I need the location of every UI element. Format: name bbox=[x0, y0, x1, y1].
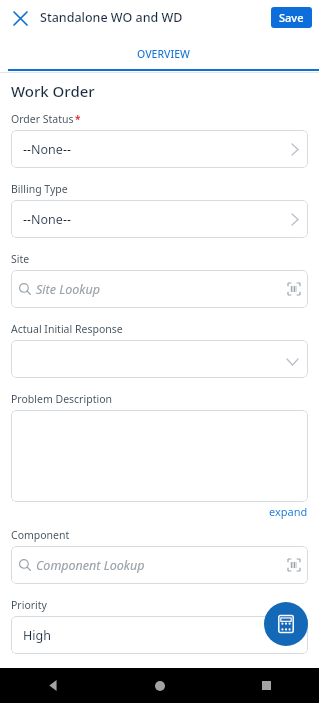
button[interactable]: --None-- bbox=[11, 130, 308, 168]
staticText: Priority bbox=[11, 598, 47, 612]
button[interactable]: Scan bbox=[288, 559, 300, 571]
staticText: Actual Initial Response bbox=[11, 322, 123, 336]
button[interactable]: High bbox=[11, 616, 308, 654]
button[interactable]: Save bbox=[271, 7, 312, 28]
staticText: Work Order bbox=[11, 81, 95, 101]
staticText: Component Lookup bbox=[36, 557, 145, 574]
button[interactable]: Recent apps bbox=[213, 668, 319, 703]
button[interactable]: Close bbox=[6, 4, 34, 32]
staticText: High bbox=[23, 627, 51, 644]
staticText: Component bbox=[11, 528, 70, 542]
staticText: Billing Type bbox=[11, 182, 68, 196]
button[interactable]: Home bbox=[107, 668, 213, 703]
button[interactable] bbox=[11, 410, 308, 502]
staticText: OVERVIEW bbox=[137, 47, 190, 61]
staticText: Order Status bbox=[11, 112, 74, 126]
button[interactable]: Back bbox=[0, 668, 107, 703]
button[interactable]: Component Lookup bbox=[11, 546, 308, 584]
button[interactable] bbox=[11, 340, 308, 378]
staticText: Standalone WO and WD bbox=[40, 9, 183, 26]
button[interactable]: expand bbox=[265, 502, 308, 519]
button[interactable]: Calculator bbox=[264, 602, 308, 646]
staticText: Site bbox=[11, 252, 30, 266]
staticText: Site Lookup bbox=[36, 281, 100, 298]
staticText: --None-- bbox=[23, 141, 71, 158]
staticText: Save bbox=[279, 10, 304, 25]
staticText: expand bbox=[269, 504, 308, 519]
button[interactable]: OVERVIEW bbox=[8, 35, 319, 73]
button[interactable]: --None-- bbox=[11, 200, 308, 238]
staticText: * bbox=[75, 112, 81, 126]
button[interactable]: Scan bbox=[288, 283, 300, 295]
staticText: --None-- bbox=[23, 211, 71, 228]
button[interactable]: Site Lookup bbox=[11, 270, 308, 308]
staticText: Problem Description bbox=[11, 392, 112, 406]
